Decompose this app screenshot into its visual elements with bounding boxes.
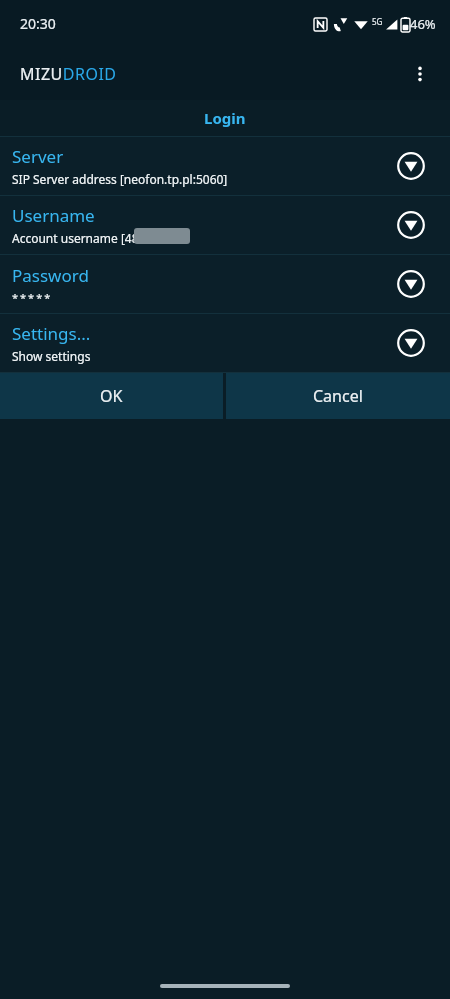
staticText: Settings... [12, 322, 91, 345]
staticText: Cancel [313, 385, 363, 407]
button[interactable]: Settings... [0, 314, 450, 372]
button[interactable]: Expand [394, 208, 428, 242]
button[interactable]: More options [398, 52, 442, 96]
staticText: Account username [4842 [12, 230, 153, 246]
button[interactable]: Password [0, 255, 450, 313]
button[interactable]: Expand [394, 149, 428, 183]
staticText: 5G [372, 16, 383, 27]
button[interactable]: Expand [394, 267, 428, 301]
staticText: OK [100, 385, 123, 407]
staticText: Password [12, 264, 89, 287]
staticText: Show settings [12, 348, 91, 364]
button[interactable]: Username [0, 196, 450, 254]
staticText: Login [204, 108, 246, 128]
staticText: 20:30 [20, 14, 56, 33]
button[interactable]: OK [0, 373, 223, 419]
staticText: MIZUDROID [20, 63, 117, 85]
staticText: 46% [410, 15, 436, 33]
staticText: Server [12, 145, 64, 168]
button[interactable]: Server [0, 137, 450, 195]
staticText: ***** [12, 290, 53, 305]
button[interactable]: Expand [394, 326, 428, 360]
staticText: Username [12, 204, 95, 227]
button[interactable]: Cancel [226, 373, 450, 419]
staticText: SIP Server address [neofon.tp.pl:5060] [12, 171, 228, 187]
